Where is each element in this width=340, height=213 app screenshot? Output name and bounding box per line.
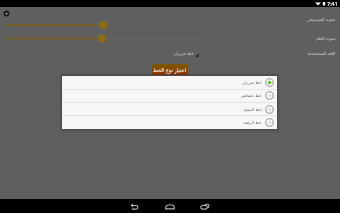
staticText: خط الرقعة: [243, 120, 262, 126]
staticText: خط النسخ: [244, 107, 262, 113]
button[interactable]: خط الرقعة: [62, 116, 277, 129]
staticText: خط عصافير: [241, 93, 262, 99]
staticText: اختيار نوع الخط: [153, 66, 187, 73]
button[interactable]: خط النسخ: [62, 103, 277, 116]
button[interactable]: خط عصافير: [62, 89, 277, 102]
staticText: صوت الموسيقى: [307, 17, 336, 23]
staticText: صوت القلم: [316, 36, 336, 42]
staticText: خط ميزران: [174, 51, 194, 57]
staticText: اللغة المستخدمة: [307, 51, 336, 57]
button[interactable]: خط ميزران: [62, 76, 277, 89]
staticText: 7:41: [327, 0, 338, 7]
button[interactable]: Home: [164, 200, 176, 212]
button[interactable]: Recents: [199, 200, 211, 212]
button[interactable]: خط ميزران: [174, 49, 199, 58]
staticText: خط ميزران: [242, 80, 262, 86]
button[interactable]: Settings: [2, 9, 11, 18]
button[interactable]: اختيار نوع الخط: [152, 64, 188, 75]
button[interactable]: Back: [128, 200, 140, 212]
